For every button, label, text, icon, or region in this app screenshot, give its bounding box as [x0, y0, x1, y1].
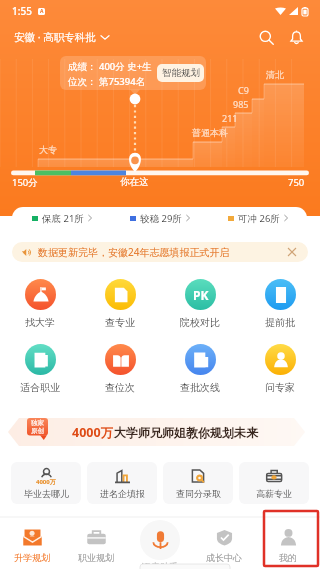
- button[interactable]: Notifications: [282, 23, 310, 51]
- button[interactable]: 4000万: [11, 462, 81, 504]
- staticText: 4000万: [72, 424, 114, 441]
- staticText: 语音助手: [142, 561, 178, 569]
- staticText: 安徽 · 高职专科批: [14, 30, 96, 44]
- staticText: C9: [238, 84, 249, 96]
- button[interactable]: 高薪专业: [239, 462, 309, 504]
- button[interactable]: 成长中心: [192, 520, 256, 569]
- button[interactable]: 较稳 29所: [111, 207, 209, 229]
- staticText: 查批次线: [180, 381, 220, 394]
- staticText: 1:55: [12, 4, 32, 18]
- button[interactable]: 问专家: [240, 341, 320, 397]
- staticText: 查同分录取: [176, 488, 221, 499]
- staticText: 适合职业: [20, 381, 60, 394]
- button[interactable]: 找大学: [0, 276, 80, 332]
- button[interactable]: 查同分录取: [163, 462, 233, 504]
- button[interactable]: 4000万: [8, 418, 305, 446]
- staticText: 我的: [279, 552, 297, 563]
- button[interactable]: 语音助手: [128, 520, 192, 569]
- staticText: 智能规划: [162, 67, 200, 79]
- staticText: 职业规划: [78, 552, 114, 563]
- button[interactable]: 可冲 26所: [209, 207, 307, 229]
- staticText: 211: [222, 112, 238, 124]
- button[interactable]: 我的: [256, 520, 320, 569]
- staticText: 查位次: [105, 381, 135, 394]
- button[interactable]: 保底 21所: [12, 207, 111, 229]
- staticText: 毕业去哪儿: [24, 488, 69, 499]
- staticText: 院校对比: [180, 316, 220, 329]
- button[interactable]: 升学规划: [0, 520, 64, 569]
- staticText: 问专家: [265, 381, 295, 394]
- button[interactable]: Close: [285, 245, 299, 259]
- button[interactable]: 查批次线: [160, 341, 240, 397]
- button[interactable]: 职业规划: [64, 520, 128, 569]
- staticText: 找大学: [25, 316, 55, 329]
- staticText: 查专业: [105, 316, 135, 329]
- staticText: A: [40, 8, 44, 15]
- staticText: 大学师兄师姐教你规划未来: [114, 425, 258, 440]
- button[interactable]: 进名企填报: [87, 462, 157, 504]
- staticText: 进名企填报: [100, 488, 145, 499]
- staticText: 大专: [39, 144, 57, 155]
- staticText: 150分: [12, 176, 38, 189]
- staticText: 可冲 26所: [238, 212, 280, 225]
- staticText: 成长中心: [206, 552, 242, 563]
- staticText: 高薪专业: [256, 488, 292, 499]
- staticText: 成绩： 400分 史+生: [68, 60, 152, 73]
- button[interactable]: Search: [252, 23, 280, 51]
- button[interactable]: PK: [160, 276, 240, 332]
- staticText: 较稳 29所: [140, 212, 182, 225]
- staticText: 普通本科: [192, 127, 228, 138]
- button[interactable]: 数据更新完毕，安徽24年志愿填报正式开启: [12, 242, 308, 262]
- staticText: 数据更新完毕，安徽24年志愿填报正式开启: [38, 245, 230, 259]
- staticText: PK: [193, 287, 209, 303]
- staticText: 清北: [266, 69, 284, 80]
- staticText: 4000万: [36, 478, 56, 486]
- button[interactable]: 查专业: [80, 276, 160, 332]
- staticText: 提前批: [265, 316, 295, 329]
- staticText: 位次： 第75394名: [68, 75, 146, 88]
- button[interactable]: 安徽 · 高职专科批: [14, 30, 109, 44]
- button[interactable]: 查位次: [80, 341, 160, 397]
- button[interactable]: 智能规划: [157, 64, 204, 82]
- staticText: 985: [233, 98, 249, 110]
- staticText: 750: [288, 176, 305, 189]
- staticText: 独家 原创: [29, 419, 46, 435]
- button[interactable]: 适合职业: [0, 341, 80, 397]
- staticText: 保底 21所: [42, 212, 84, 225]
- staticText: 升学规划: [14, 552, 50, 563]
- button[interactable]: 提前批: [240, 276, 320, 332]
- staticText: 你在这: [120, 176, 149, 188]
